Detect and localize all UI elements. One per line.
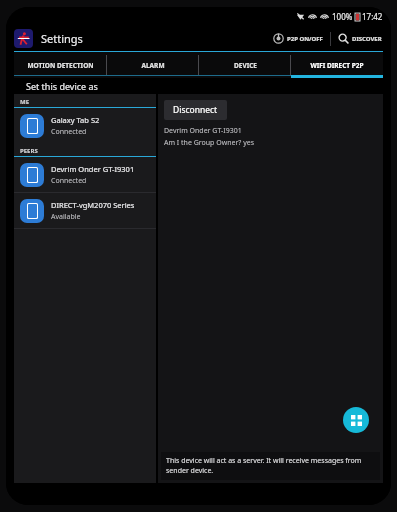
staticText: DIRECT-vgM2070 Series xyxy=(51,200,135,210)
staticText: 17:42 xyxy=(362,11,383,22)
button[interactable]: Galaxy Tab S2 xyxy=(14,108,156,143)
staticText: Devrim Onder GT-I9301 xyxy=(51,164,135,174)
button[interactable]: MOTION DETECTION xyxy=(14,52,107,78)
staticText: WIFI DIRECT P2P xyxy=(310,61,364,70)
staticText: DISCOVER xyxy=(352,35,382,43)
staticText: Connected xyxy=(51,127,87,137)
staticText: DEVICE xyxy=(234,61,257,70)
staticText: Settings xyxy=(41,31,83,46)
staticText: Set this device as xyxy=(26,80,98,92)
button[interactable]: DIRECT-vgM2070 Series xyxy=(14,193,156,228)
staticText: ALARM xyxy=(141,61,165,70)
button[interactable]: P2P ON/OFF xyxy=(270,29,326,48)
button[interactable]: Disconnect xyxy=(164,100,227,120)
staticText: Galaxy Tab S2 xyxy=(51,115,100,125)
button[interactable]: DISCOVER xyxy=(335,29,385,48)
staticText: This device will act as a server. It wil… xyxy=(166,456,375,476)
staticText: Devrim Onder GT-I9301 xyxy=(164,126,242,136)
button[interactable]: DEVICE xyxy=(199,52,291,78)
staticText: ME xyxy=(20,98,30,106)
staticText: 100% xyxy=(332,11,353,22)
staticText: Available xyxy=(51,212,81,222)
button[interactable]: Devrim Onder GT-I9301 xyxy=(14,157,156,192)
staticText: P2P ON/OFF xyxy=(287,35,323,43)
staticText: MOTION DETECTION xyxy=(27,61,94,70)
staticText: Disconnect xyxy=(173,104,218,116)
staticText: PEERS xyxy=(20,147,38,155)
staticText: Am I the Group Owner? yes xyxy=(164,138,255,148)
button[interactable]: Apps xyxy=(343,407,369,433)
staticText: Connected xyxy=(51,176,87,186)
button[interactable]: WIFI DIRECT P2P xyxy=(291,52,383,78)
button[interactable]: App icon xyxy=(14,29,33,48)
button[interactable]: ALARM xyxy=(107,52,199,78)
